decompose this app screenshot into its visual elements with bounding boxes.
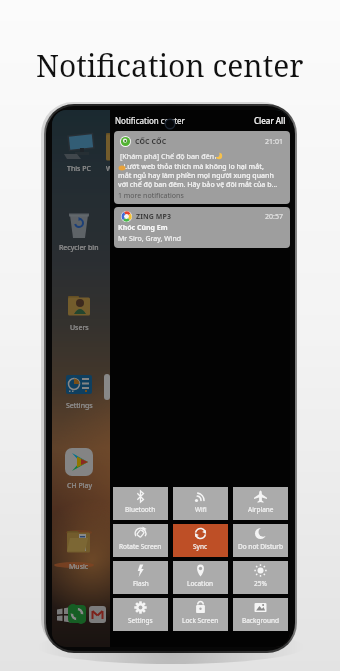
button[interactable]: Lock Screen xyxy=(173,598,228,631)
staticText: 20:57 xyxy=(265,212,283,222)
staticText: Sync xyxy=(193,542,208,551)
staticText: Clear All xyxy=(254,115,286,126)
staticText: Khóc Cùng Em xyxy=(118,223,168,233)
button[interactable]: Do not Disturb xyxy=(233,524,288,557)
staticText: ZING MP3 xyxy=(136,212,172,222)
staticText: Location xyxy=(187,579,214,588)
button[interactable] xyxy=(59,212,99,254)
button[interactable]: CỐC CỐC xyxy=(114,131,290,204)
staticText: Settings xyxy=(128,616,153,625)
button[interactable]: Background xyxy=(233,598,288,631)
button[interactable] xyxy=(59,528,99,570)
button[interactable] xyxy=(59,372,99,414)
staticText: Lướt web thỏa thích mà không lo hại mắt,… xyxy=(118,162,278,189)
staticText: [Khám phá] Chế độ ban đêm xyxy=(120,151,217,161)
button[interactable] xyxy=(59,448,99,490)
staticText: Background xyxy=(242,616,279,625)
staticText: Notification center xyxy=(36,45,304,86)
staticText: Settings xyxy=(66,401,93,411)
button[interactable] xyxy=(88,605,106,623)
staticText: Notification center xyxy=(115,115,185,126)
staticText: 25% xyxy=(254,579,267,588)
staticText: Do not Disturb xyxy=(238,542,283,551)
staticText: 1 more notifications xyxy=(118,191,184,201)
button[interactable] xyxy=(59,132,99,174)
staticText: Users xyxy=(70,323,89,333)
button[interactable]: Rotate Screen xyxy=(113,524,168,557)
button[interactable]: Flash xyxy=(113,561,168,594)
staticText: 21:01 xyxy=(265,137,283,147)
staticText: Rotate Screen xyxy=(119,542,162,551)
staticText: Recycler bin xyxy=(59,243,99,253)
button[interactable]: Bluetooth xyxy=(113,487,168,520)
button[interactable]: Clear All xyxy=(254,115,286,126)
staticText: Airplane xyxy=(248,505,274,514)
button[interactable]: Airplane xyxy=(233,487,288,520)
button[interactable] xyxy=(67,604,86,623)
button[interactable]: 25% xyxy=(233,561,288,594)
button[interactable]: Wifi xyxy=(173,487,228,520)
button[interactable]: Settings xyxy=(113,598,168,631)
staticText: CH Play xyxy=(67,481,92,491)
staticText: Flash xyxy=(133,579,149,588)
button[interactable] xyxy=(59,292,99,334)
button[interactable] xyxy=(55,604,72,621)
staticText: W xyxy=(106,164,113,174)
staticText: Wifi xyxy=(195,505,207,514)
staticText: Bluetooth xyxy=(125,505,156,514)
staticText: Music xyxy=(69,562,89,572)
button[interactable]: Location xyxy=(173,561,228,594)
staticText: Lock Screen xyxy=(182,616,219,625)
button[interactable]: Sync xyxy=(173,524,228,557)
staticText: CỐC CỐC xyxy=(135,137,167,147)
staticText: This PC xyxy=(67,164,91,174)
staticText: Mr Siro, Gray, Wind xyxy=(118,234,182,244)
button[interactable]: ZING MP3 xyxy=(114,207,290,248)
